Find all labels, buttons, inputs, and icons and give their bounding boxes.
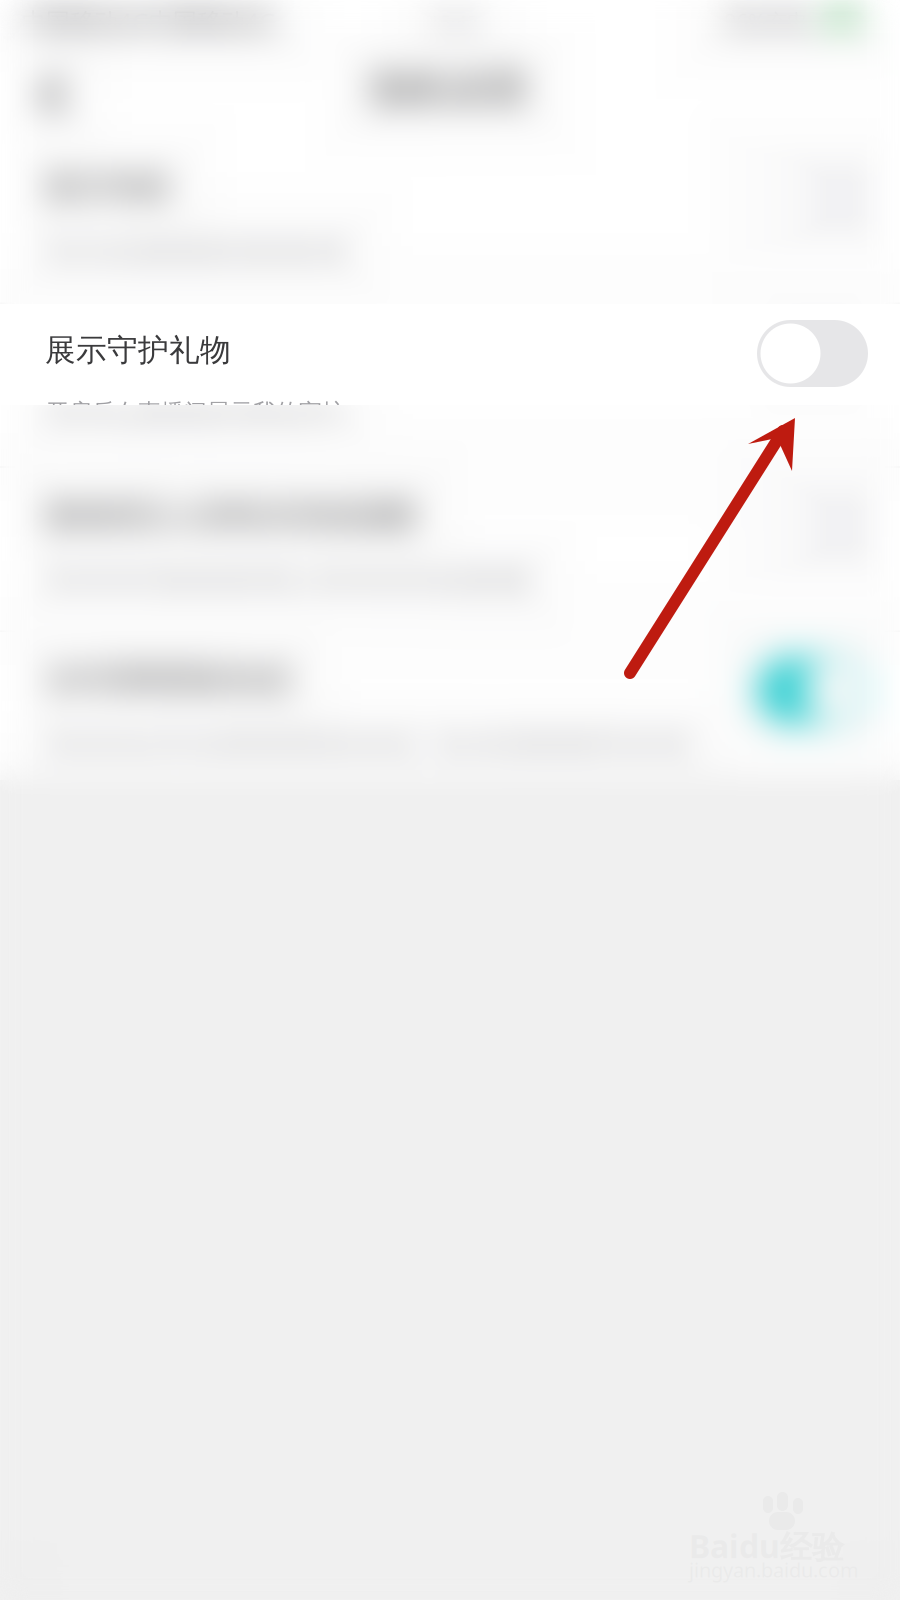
staticText: 隐私设置 — [372, 65, 528, 113]
staticText: 显示等级 — [45, 168, 169, 207]
staticText: 中国移动4G中国移动4G — [22, 5, 276, 38]
staticText: 展示守护礼物 — [45, 331, 231, 370]
button[interactable]: 显示等级 — [0, 0, 900, 1600]
button[interactable]: Back — [0, 0, 900, 1600]
staticText: 接收陌生人的私信消息提醒 — [45, 496, 417, 535]
staticText: 开启后在直播间展示我的守护 — [46, 398, 345, 427]
button[interactable]: 展示守护礼物 — [0, 0, 900, 1600]
staticText: 允许查看我的动态 — [45, 660, 293, 699]
button[interactable]: 允许查看我的动态 — [0, 0, 900, 1600]
button[interactable]: 接收陌生人的私信消息提醒 — [0, 0, 900, 1600]
